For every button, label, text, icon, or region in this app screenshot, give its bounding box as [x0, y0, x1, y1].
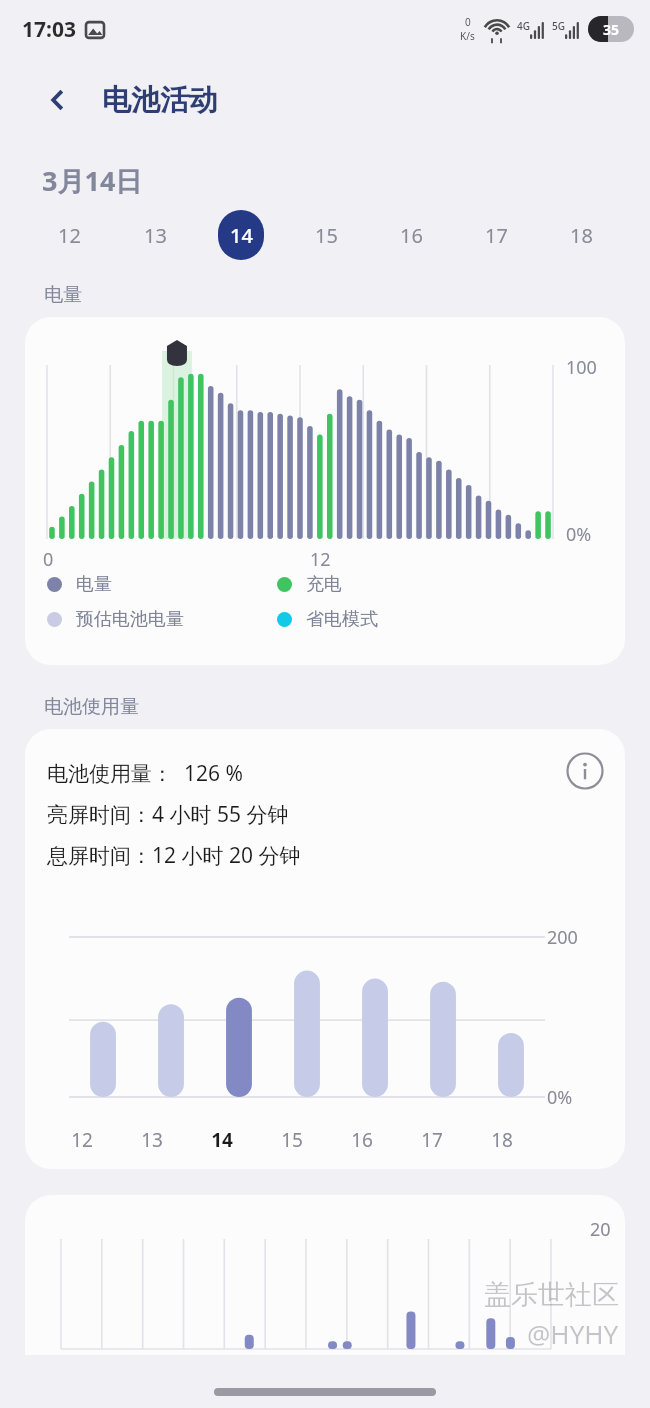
- button[interactable]: 电量: [47, 573, 277, 596]
- staticText: 12: [58, 222, 81, 249]
- button[interactable]: 省电模式: [277, 608, 477, 631]
- staticText: 电池使用量: [44, 695, 139, 719]
- staticText: 18: [491, 1127, 513, 1153]
- staticText: 4G: [517, 19, 530, 33]
- staticText: 5G: [552, 19, 565, 33]
- staticText: 预估电池电量: [76, 608, 184, 631]
- staticText: 20: [590, 1217, 611, 1242]
- staticText: 亮屏时间：4 小时 55 分钟: [47, 800, 289, 829]
- staticText: 0: [465, 15, 471, 29]
- staticText: 0%: [547, 1085, 573, 1110]
- staticText: 17: [421, 1127, 443, 1153]
- staticText: 电池活动: [102, 82, 218, 119]
- staticText: 100: [566, 355, 597, 380]
- staticText: 18: [570, 222, 593, 249]
- staticText: 3月14日: [42, 162, 143, 199]
- staticText: 14: [211, 1127, 233, 1153]
- staticText: 17: [485, 222, 508, 249]
- staticText: 15: [281, 1127, 303, 1153]
- staticText: 0%: [566, 522, 592, 547]
- staticText: 35: [603, 20, 620, 39]
- button[interactable]: 17: [454, 199, 539, 271]
- button[interactable]: 12: [26, 199, 112, 271]
- staticText: 12: [310, 547, 331, 572]
- staticText: 息屏时间：12 小时 20 分钟: [47, 841, 301, 870]
- staticText: 省电模式: [306, 608, 378, 631]
- button[interactable]: 14: [198, 199, 284, 271]
- staticText: 盖乐世社区: [484, 1278, 619, 1312]
- button[interactable]: 返回: [34, 76, 82, 124]
- staticText: 电池使用量： 126 %: [47, 759, 243, 788]
- button[interactable]: 13: [112, 199, 198, 271]
- staticText: 16: [400, 222, 423, 249]
- staticText: 14: [230, 222, 253, 249]
- staticText: 15: [315, 222, 338, 249]
- button[interactable]: 预估电池电量: [47, 608, 277, 631]
- staticText: 17:03: [22, 15, 76, 44]
- staticText: 12: [71, 1127, 93, 1153]
- staticText: 0: [43, 547, 54, 572]
- staticText: 电量: [44, 283, 82, 307]
- staticText: 充电: [306, 573, 342, 596]
- staticText: 200: [547, 925, 578, 950]
- staticText: 13: [141, 1127, 163, 1153]
- button[interactable]: 18: [539, 199, 624, 271]
- button[interactable]: 充电: [277, 573, 477, 596]
- staticText: 16: [351, 1127, 373, 1153]
- button[interactable]: 信息: [563, 749, 607, 793]
- button[interactable]: 16: [369, 199, 454, 271]
- staticText: @HYHY: [527, 1316, 619, 1351]
- staticText: 电量: [76, 573, 112, 596]
- button[interactable]: 15: [284, 199, 369, 271]
- staticText: 13: [144, 222, 167, 249]
- staticText: K/s: [460, 29, 475, 43]
